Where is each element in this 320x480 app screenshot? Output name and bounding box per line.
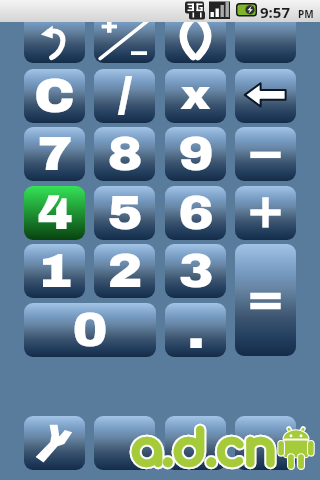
staticText: a.d.cn bbox=[131, 424, 277, 476]
button[interactable]: 0 bbox=[24, 303, 156, 357]
staticText: 7 bbox=[37, 129, 73, 180]
button[interactable]: Undo bbox=[24, 9, 85, 63]
button[interactable]: Plus minus sign bbox=[94, 9, 155, 63]
button[interactable]: 2 bbox=[94, 244, 155, 298]
button[interactable]: 3 bbox=[165, 244, 226, 298]
button[interactable]: 7 bbox=[24, 127, 85, 181]
button[interactable]: Menu item 1 bbox=[94, 416, 155, 470]
staticText: / bbox=[118, 69, 132, 123]
staticText: 2 bbox=[107, 246, 143, 297]
button[interactable]: 1 bbox=[24, 244, 85, 298]
button[interactable]: More bbox=[235, 9, 296, 63]
button[interactable]: 8 bbox=[94, 127, 155, 181]
button[interactable]: 9 bbox=[165, 127, 226, 181]
button[interactable]: / bbox=[94, 69, 155, 123]
staticText: C bbox=[34, 71, 75, 122]
staticText: 9:57 bbox=[260, 2, 290, 22]
staticText: 4 bbox=[37, 188, 73, 239]
staticText: x bbox=[180, 74, 211, 118]
staticText: 1 bbox=[37, 246, 73, 297]
staticText: PM bbox=[298, 7, 314, 21]
staticText: 8 bbox=[107, 129, 143, 180]
button[interactable]: Parentheses bbox=[165, 9, 226, 63]
staticText: a.d.cn bbox=[131, 424, 277, 476]
button[interactable]: . bbox=[165, 303, 226, 357]
staticText: 5 bbox=[107, 188, 143, 239]
staticText: 0 bbox=[72, 305, 108, 356]
button[interactable]: Menu item 2 bbox=[165, 416, 226, 470]
button[interactable]: Equals bbox=[235, 244, 296, 356]
staticText: 3 bbox=[178, 246, 214, 297]
button[interactable]: Backspace bbox=[235, 69, 296, 123]
button[interactable]: Plus bbox=[235, 186, 296, 240]
button[interactable]: Menu item 3 bbox=[235, 416, 296, 470]
staticText: 9 bbox=[178, 129, 214, 180]
staticText: . bbox=[187, 307, 205, 357]
button[interactable]: 5 bbox=[94, 186, 155, 240]
button[interactable]: C bbox=[24, 69, 85, 123]
button[interactable]: 4 bbox=[24, 186, 85, 240]
staticText: a.d.cn bbox=[131, 424, 277, 476]
button[interactable]: x bbox=[165, 69, 226, 123]
button[interactable]: Settings bbox=[24, 416, 85, 470]
button[interactable]: Minus bbox=[235, 127, 296, 181]
button[interactable]: 6 bbox=[165, 186, 226, 240]
staticText: 6 bbox=[178, 188, 214, 239]
